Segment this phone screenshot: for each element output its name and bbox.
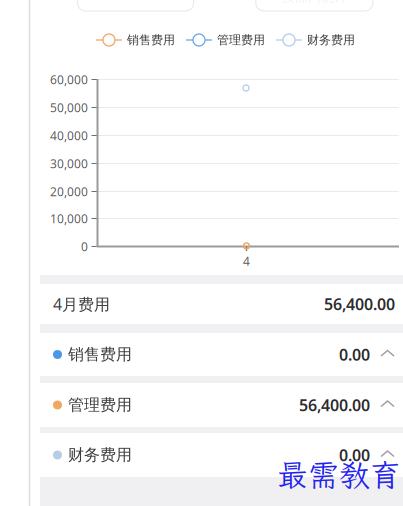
button[interactable]: 管理费用 xyxy=(40,383,403,427)
button[interactable]: Department picker xyxy=(256,0,373,11)
button[interactable]: 销售费用 xyxy=(40,333,403,376)
staticText: 4 xyxy=(243,253,250,269)
button[interactable]: 4月费用 xyxy=(40,284,403,324)
staticText: 按部门统计 xyxy=(282,0,347,5)
button[interactable]: Year picker xyxy=(78,0,194,11)
staticText: 销售费用 xyxy=(68,345,132,364)
staticText: 管理费用 xyxy=(68,395,132,415)
button[interactable]: 财务费用 xyxy=(40,433,403,477)
staticText: 4月费用 xyxy=(53,293,110,315)
staticText: 20,000 xyxy=(50,183,88,199)
staticText: 60,000 xyxy=(50,71,88,87)
staticText: 40,000 xyxy=(50,127,88,143)
staticText: 56,400.00 xyxy=(299,394,370,416)
staticText: 0.00 xyxy=(339,344,370,365)
staticText: 财务费用 xyxy=(68,445,132,465)
staticText: 最需教育 xyxy=(277,454,401,495)
staticText: 50,000 xyxy=(50,99,88,115)
staticText: 销售费用 xyxy=(127,33,175,47)
staticText: 管理费用 xyxy=(217,33,265,47)
staticText: 财务费用 xyxy=(307,33,355,47)
staticText: 56,400.00 xyxy=(324,293,395,315)
staticText: 10,000 xyxy=(50,210,88,226)
staticText: 0 xyxy=(81,238,88,254)
staticText: 30,000 xyxy=(50,155,88,171)
staticText: 0.00 xyxy=(339,444,370,466)
